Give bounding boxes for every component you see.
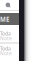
- staticText: Toda: [0, 45, 11, 52]
- staticText: Note: [0, 50, 12, 56]
- staticText: Toda: [0, 30, 11, 37]
- button[interactable]: Toda: [0, 45, 19, 61]
- button[interactable]: Search: [3, 0, 14, 11]
- button[interactable]: Toda: [0, 30, 19, 46]
- staticText: ME: [0, 15, 9, 24]
- staticText: Note: [0, 35, 12, 41]
